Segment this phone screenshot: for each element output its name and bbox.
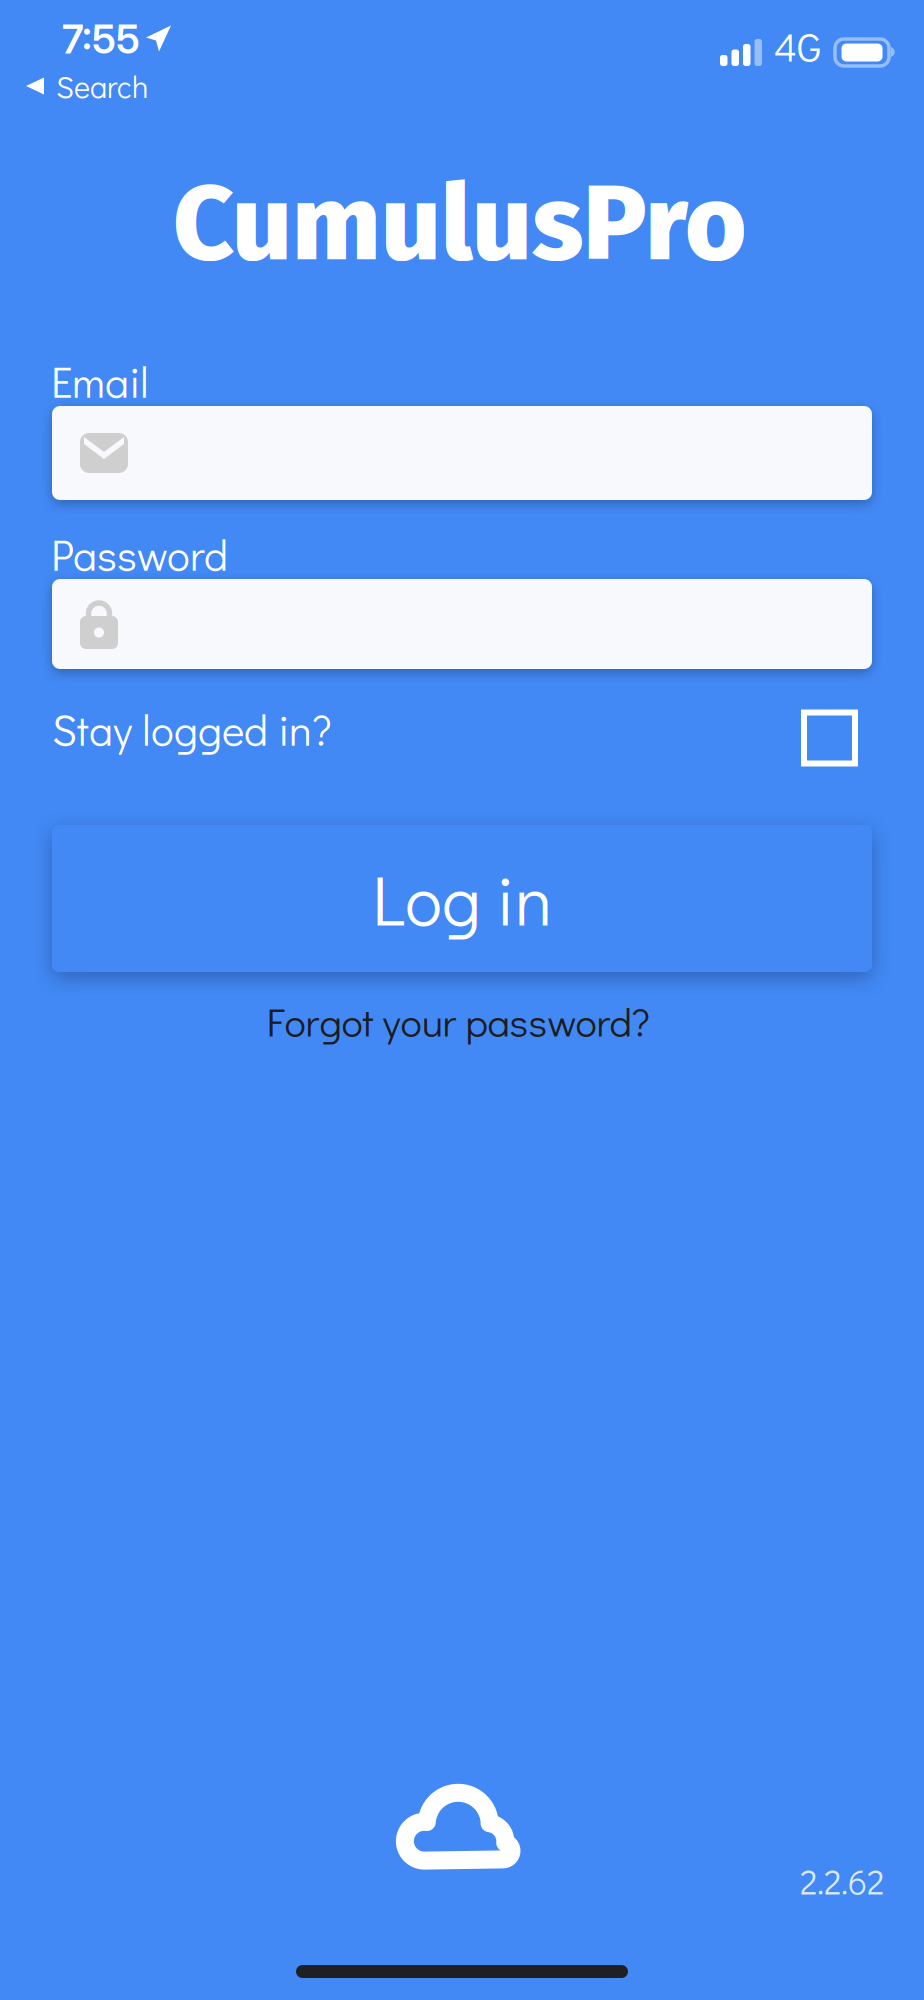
staticText: Forgot your password?	[266, 995, 649, 1047]
staticText: Search	[56, 66, 148, 106]
button[interactable]: Forgot your password?	[242, 992, 673, 1050]
button[interactable]: Back to Search	[0, 59, 164, 113]
button[interactable]: Log in	[52, 825, 872, 972]
staticText: 7:55	[62, 15, 140, 63]
staticText: Log in	[372, 853, 552, 944]
staticText: 2.2.62	[800, 1858, 884, 1904]
staticText: Email	[51, 353, 149, 409]
button[interactable]: Stay logged in?	[52, 693, 872, 765]
staticText: 4G	[774, 20, 821, 72]
staticText: Stay logged in?	[52, 701, 332, 757]
staticText: CumulusPro	[173, 161, 747, 287]
staticText: Password	[51, 526, 228, 582]
